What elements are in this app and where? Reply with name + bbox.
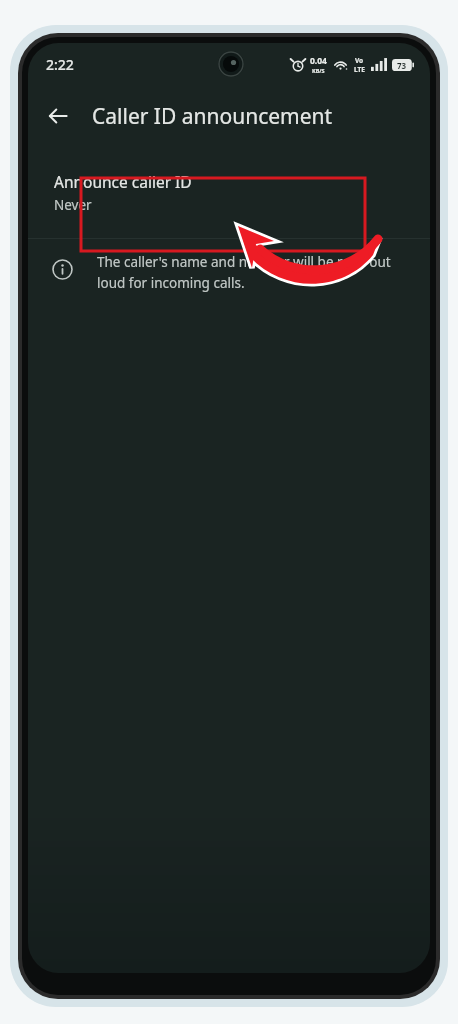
staticText: Never	[54, 196, 92, 214]
staticText: 0.04	[310, 55, 327, 67]
button[interactable]: Back	[34, 92, 82, 140]
staticText: LTE	[354, 65, 365, 74]
staticText: Caller ID announcement	[92, 102, 333, 131]
staticText: 73	[397, 60, 407, 71]
button[interactable]: Announce caller ID	[28, 159, 430, 228]
staticText: Vo	[355, 56, 364, 65]
staticText: Announce caller ID	[54, 171, 192, 192]
staticText: KB/S	[312, 67, 325, 74]
staticText: The caller's name and number will be rea…	[97, 253, 410, 292]
staticText: 2:22	[46, 55, 74, 74]
